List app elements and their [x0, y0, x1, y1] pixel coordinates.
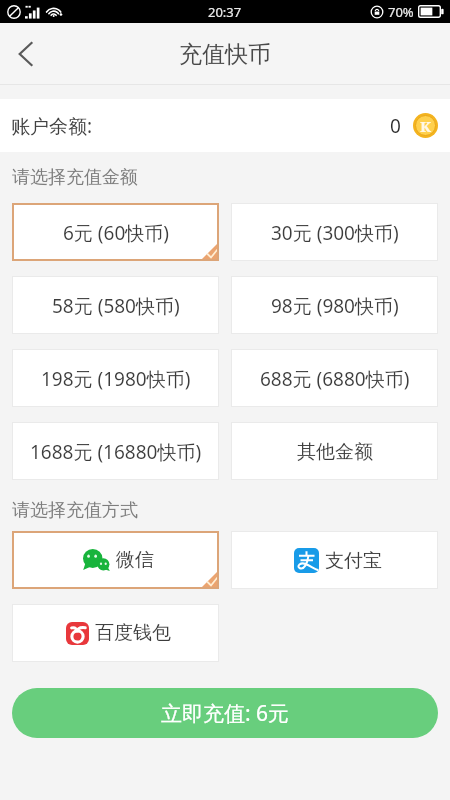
- staticText: 其他金额: [297, 440, 373, 464]
- button[interactable]: 688元 (6880快币): [231, 349, 438, 407]
- staticText: 充值快币: [179, 40, 271, 69]
- staticText: 立即充值: 6元: [161, 699, 290, 728]
- button[interactable]: 6元 (60快币): [12, 203, 219, 261]
- staticText: 20:37: [208, 3, 242, 21]
- staticText: 支付宝: [325, 549, 382, 573]
- button[interactable]: 58元 (580快币): [12, 276, 219, 334]
- staticText: 98元 (980快币): [271, 293, 399, 319]
- button[interactable]: 其他金额: [231, 422, 438, 480]
- staticText: 请选择充值方式: [12, 499, 138, 522]
- staticText: 微信: [116, 548, 154, 572]
- staticText: 6元 (60快币): [63, 220, 169, 246]
- button[interactable]: 98元 (980快币): [231, 276, 438, 334]
- button[interactable]: 立即充值: 6元: [12, 688, 438, 738]
- button[interactable]: 支付宝: [231, 531, 438, 589]
- staticText: 688元 (6880快币): [260, 366, 410, 392]
- staticText: 百度钱包: [95, 621, 171, 645]
- staticText: 30元 (300快币): [271, 220, 399, 246]
- staticText: K: [420, 116, 432, 136]
- button[interactable]: 198元 (1980快币): [12, 349, 219, 407]
- button[interactable]: 1688元 (16880快币): [12, 422, 219, 480]
- staticText: 58元 (580快币): [52, 293, 180, 319]
- staticText: 1688元 (16880快币): [30, 439, 202, 465]
- staticText: 0: [390, 113, 401, 139]
- staticText: 账户余额:: [11, 113, 93, 139]
- staticText: 请选择充值金额: [12, 166, 138, 189]
- staticText: 198元 (1980快币): [41, 366, 191, 392]
- staticText: 70%: [388, 3, 414, 21]
- button[interactable]: 百度钱包: [12, 604, 219, 662]
- button[interactable]: 微信: [12, 531, 219, 589]
- button[interactable]: 30元 (300快币): [231, 203, 438, 261]
- button[interactable]: Back: [0, 23, 52, 85]
